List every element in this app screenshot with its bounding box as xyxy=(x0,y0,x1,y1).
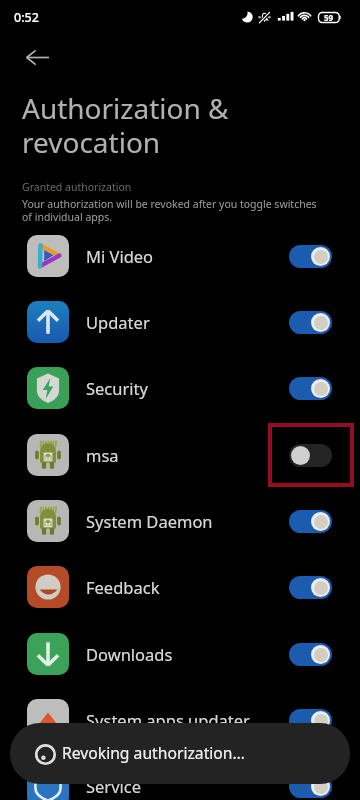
staticText: 0:52 xyxy=(14,9,39,26)
button[interactable]: Downloads xyxy=(0,621,360,687)
staticText: Mi Video xyxy=(86,245,154,267)
button[interactable]: Feedback xyxy=(0,554,360,620)
staticText: msa xyxy=(86,444,119,466)
button[interactable]: Toggle xyxy=(289,576,332,599)
button[interactable]: Toggle xyxy=(289,444,332,467)
staticText: Your authorization will be revoked after… xyxy=(22,197,327,224)
staticText: Updater xyxy=(86,311,150,333)
button[interactable]: Toggle xyxy=(289,510,332,533)
staticText: Downloads xyxy=(86,643,173,665)
button[interactable]: Revoking authorization… xyxy=(10,723,350,784)
button[interactable]: Security xyxy=(0,355,360,421)
staticText: Service xyxy=(86,775,142,797)
staticText: System apps updater xyxy=(86,709,250,731)
button[interactable]: Toggle xyxy=(289,311,332,334)
button[interactable]: Toggle xyxy=(289,245,332,268)
button[interactable]: msa xyxy=(0,422,360,488)
button[interactable]: Updater xyxy=(0,289,360,355)
staticText: Revoking authorization… xyxy=(62,742,245,763)
staticText: Authorization & revocation xyxy=(22,89,229,161)
button[interactable]: Toggle xyxy=(289,643,332,666)
button[interactable]: Back xyxy=(13,33,61,81)
button[interactable]: Toggle xyxy=(289,377,332,400)
button[interactable]: Toggle xyxy=(289,709,332,732)
staticText: Feedback xyxy=(86,576,160,598)
button[interactable]: Service xyxy=(0,753,360,800)
button[interactable]: Toggle xyxy=(289,775,332,798)
button[interactable]: System apps updater xyxy=(0,687,360,753)
staticText: Security xyxy=(86,377,148,399)
staticText: Granted authorization xyxy=(22,180,132,194)
staticText: 59 xyxy=(324,12,334,23)
button[interactable]: Mi Video xyxy=(0,223,360,289)
button[interactable]: System Daemon xyxy=(0,488,360,554)
staticText: System Daemon xyxy=(86,510,213,532)
